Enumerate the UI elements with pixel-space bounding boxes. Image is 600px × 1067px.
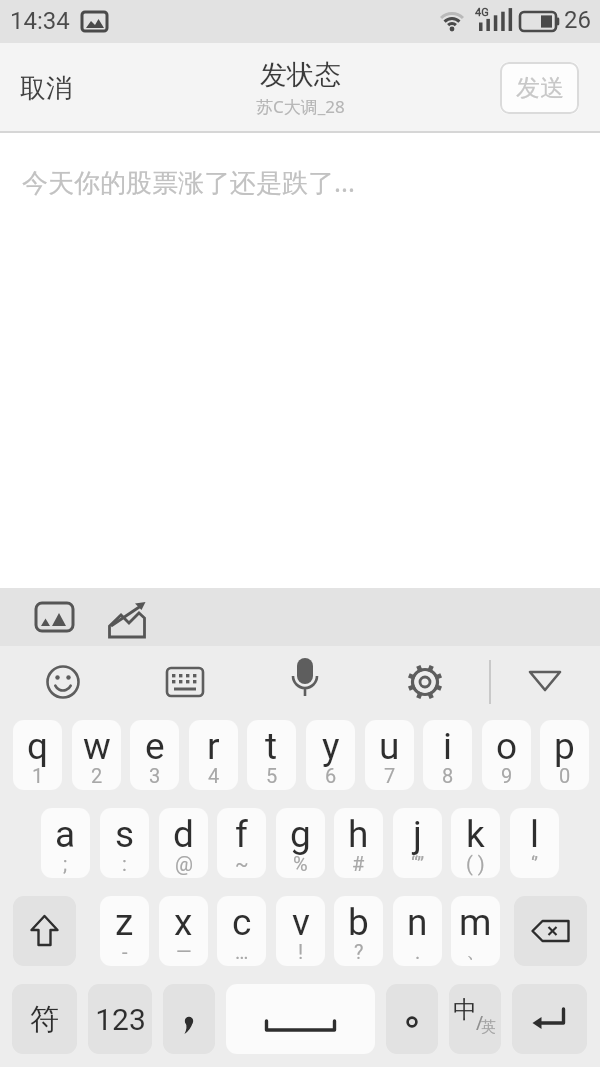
staticText: 123 xyxy=(95,1002,146,1037)
button[interactable]: e xyxy=(130,720,179,790)
staticText: q xyxy=(27,725,49,768)
staticText: m xyxy=(459,901,492,944)
staticText: d xyxy=(173,813,194,856)
staticText: n xyxy=(407,901,428,944)
staticText: @ xyxy=(175,852,193,875)
button[interactable]: m xyxy=(451,896,500,966)
staticText: 发送 xyxy=(516,73,564,103)
button[interactable]: j xyxy=(393,808,442,878)
staticText: r xyxy=(207,725,220,768)
staticText: e xyxy=(145,725,165,768)
staticText: % xyxy=(293,852,308,875)
staticText: 2 xyxy=(91,764,103,787)
staticText: j xyxy=(413,813,422,856)
staticText: 今天你的股票涨了还是跌了... xyxy=(22,164,355,200)
button[interactable]: o xyxy=(482,720,531,790)
staticText: y xyxy=(322,725,340,768)
staticText: 1 xyxy=(32,764,44,787)
staticText: … xyxy=(235,940,249,963)
button[interactable]: c xyxy=(217,896,266,966)
button[interactable]: 发送 xyxy=(500,62,579,114)
button[interactable] xyxy=(157,656,213,708)
staticText: 英 xyxy=(481,1018,496,1037)
staticText: 苏C大调_28 xyxy=(256,95,345,118)
button[interactable]: y xyxy=(306,720,355,790)
button[interactable]: d xyxy=(159,808,208,878)
button[interactable]: r xyxy=(189,720,238,790)
staticText: x xyxy=(174,901,193,944)
staticText: s xyxy=(115,813,135,856)
staticText: g xyxy=(290,813,311,856)
button[interactable]: z xyxy=(100,896,149,966)
button[interactable]: w xyxy=(72,720,121,790)
button[interactable]: x xyxy=(159,896,208,966)
staticText: . xyxy=(415,940,421,963)
button[interactable]: 取消 xyxy=(6,58,86,119)
button[interactable]: 中 xyxy=(449,984,501,1054)
button[interactable]: i xyxy=(423,720,472,790)
staticText: v xyxy=(292,901,310,944)
staticText: 5 xyxy=(266,764,278,787)
staticText: 0 xyxy=(559,764,571,787)
button[interactable]: s xyxy=(100,808,149,878)
button[interactable] xyxy=(37,656,89,708)
button[interactable]: a xyxy=(41,808,90,878)
button[interactable]: 符 xyxy=(12,984,77,1054)
staticText: ~ xyxy=(235,852,249,875)
staticText: # xyxy=(352,852,365,875)
button[interactable]: p xyxy=(540,720,589,790)
button[interactable]: h xyxy=(334,808,383,878)
button[interactable]: k xyxy=(451,808,500,878)
staticText: z xyxy=(115,901,134,944)
staticText: 取消 xyxy=(20,72,72,105)
button[interactable]: b xyxy=(334,896,383,966)
staticText: o xyxy=(496,725,518,768)
staticText: 发状态 xyxy=(260,58,341,92)
button[interactable] xyxy=(13,896,76,966)
button[interactable] xyxy=(28,593,80,641)
staticText: i xyxy=(443,725,452,768)
button[interactable] xyxy=(512,984,587,1054)
staticText: 4 xyxy=(208,764,220,787)
button[interactable]: g xyxy=(276,808,325,878)
staticText: : xyxy=(122,852,127,875)
staticText: 9 xyxy=(501,764,513,787)
staticText: k xyxy=(466,813,485,856)
staticText: u xyxy=(379,725,400,768)
staticText: 3 xyxy=(149,764,161,787)
staticText: ( ) xyxy=(466,852,485,875)
staticText: b xyxy=(348,901,369,944)
button[interactable]: f xyxy=(217,808,266,878)
button[interactable]: q xyxy=(13,720,62,790)
button[interactable] xyxy=(514,896,587,966)
staticText: 8 xyxy=(442,764,454,787)
button[interactable] xyxy=(279,650,331,714)
button[interactable] xyxy=(386,984,438,1054)
button[interactable]: 123 xyxy=(88,984,152,1054)
staticText: ! xyxy=(298,940,304,963)
button[interactable] xyxy=(226,984,375,1054)
button[interactable]: t xyxy=(247,720,296,790)
staticText: ; xyxy=(63,852,68,875)
staticText: w xyxy=(83,725,111,768)
staticText: t xyxy=(265,725,278,768)
button[interactable] xyxy=(100,593,156,641)
button[interactable]: n xyxy=(393,896,442,966)
button[interactable]: u xyxy=(365,720,414,790)
button[interactable] xyxy=(399,656,451,708)
button[interactable] xyxy=(519,660,571,704)
staticText: l xyxy=(530,813,539,856)
staticText: h xyxy=(348,813,369,856)
staticText: — xyxy=(176,940,192,963)
staticText: 14:34 xyxy=(10,7,70,35)
staticText: p xyxy=(554,725,575,768)
button[interactable]: l xyxy=(510,808,559,878)
staticText: ? xyxy=(354,940,364,963)
staticText: c xyxy=(232,901,252,944)
button[interactable]: v xyxy=(276,896,325,966)
staticText: 中 xyxy=(453,995,477,1025)
staticText: f xyxy=(235,813,248,856)
staticText: a xyxy=(55,813,76,856)
button[interactable] xyxy=(163,984,215,1054)
staticText: - xyxy=(122,940,128,963)
